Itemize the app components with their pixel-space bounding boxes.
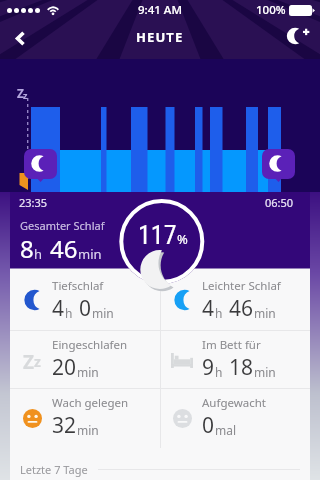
button[interactable]: Im Bett für	[160, 331, 311, 388]
staticText: Aufgewacht	[202, 395, 267, 411]
button[interactable]: Wach gelegen	[10, 389, 161, 446]
button[interactable]: Tiefschlaf	[10, 269, 161, 331]
staticText: 32	[52, 411, 77, 440]
staticText: Gesamter Schlaf	[20, 218, 105, 233]
staticText: min	[78, 245, 102, 263]
staticText: h	[34, 245, 43, 263]
staticText: 46	[229, 294, 254, 323]
staticText: 117	[138, 220, 177, 250]
staticText: 18	[229, 353, 254, 382]
staticText: Leichter Schlaf	[202, 278, 281, 294]
staticText: h	[215, 364, 223, 380]
staticText: Im Bett für	[202, 337, 261, 353]
button[interactable]: Z	[10, 331, 161, 388]
staticText: min	[77, 364, 99, 380]
staticText: 0	[79, 294, 92, 323]
staticText: 06:50	[265, 195, 294, 210]
staticText: Wach gelegen	[52, 395, 129, 411]
staticText: Z	[17, 85, 24, 101]
staticText: 100%	[256, 2, 286, 18]
staticText: h	[65, 305, 73, 321]
staticText: Eingeschlafen	[52, 337, 128, 353]
staticText: Letzte 7 Tage	[20, 462, 88, 477]
staticText: 8	[20, 232, 34, 265]
button[interactable]: Zurück	[0, 18, 40, 58]
staticText: z	[34, 352, 41, 371]
staticText: 4	[52, 294, 65, 323]
staticText: 20	[52, 353, 77, 382]
staticText: min	[92, 305, 114, 321]
staticText: 9	[202, 353, 215, 382]
staticText: min	[77, 422, 99, 438]
staticText: HEUTE	[136, 28, 184, 46]
staticText: mal	[215, 422, 237, 438]
staticText: %	[177, 230, 188, 248]
staticText: 23:35	[19, 195, 48, 210]
staticText: Z	[23, 349, 35, 371]
button[interactable]: Leichter Schlaf	[160, 269, 311, 331]
staticText: 9:41 AM	[138, 2, 182, 18]
staticText: 46	[50, 232, 78, 265]
staticText: min	[254, 364, 276, 380]
button[interactable]: Schlaf hinzufügen	[276, 14, 320, 58]
staticText: Tiefschlaf	[52, 278, 104, 294]
staticText: min	[254, 305, 276, 321]
staticText: z	[23, 89, 28, 101]
staticText: 0	[202, 411, 215, 440]
button[interactable]: Aufgewacht	[160, 389, 311, 446]
staticText: h	[215, 305, 223, 321]
staticText: 4	[202, 294, 215, 323]
